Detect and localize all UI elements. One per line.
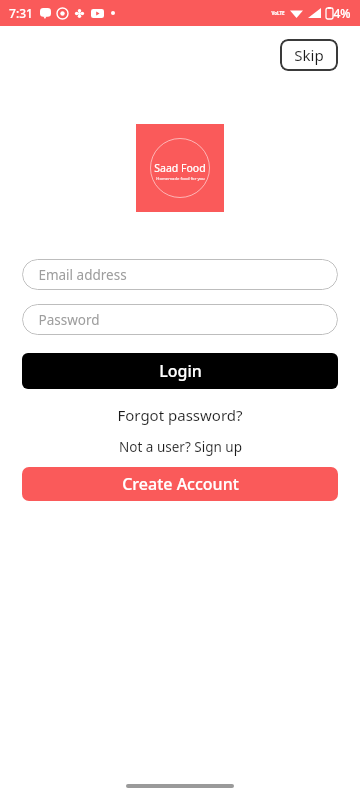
staticText: Saad Food <box>154 161 206 175</box>
button[interactable]: Create Account <box>22 467 338 501</box>
staticText: Homemade food for you <box>156 176 205 182</box>
staticText: Login <box>159 360 202 382</box>
staticText: Not a user? Sign up <box>119 438 242 456</box>
staticText: Create Account <box>122 473 239 495</box>
button[interactable]: Email address <box>22 259 338 290</box>
staticText: VoLTE <box>271 10 285 16</box>
staticText: 7:31 <box>9 5 33 21</box>
button[interactable]: Skip <box>280 39 338 71</box>
button[interactable]: Password <box>22 304 338 335</box>
staticText: Skip <box>294 45 324 65</box>
staticText: 4% <box>333 5 351 21</box>
staticText: Email address <box>38 266 127 284</box>
staticText: Forgot password? <box>117 405 243 425</box>
button[interactable]: Forgot password? <box>111 403 249 427</box>
button[interactable]: Login <box>22 353 338 389</box>
staticText: Password <box>38 311 100 329</box>
button[interactable]: Not a user? Sign up <box>113 436 248 458</box>
